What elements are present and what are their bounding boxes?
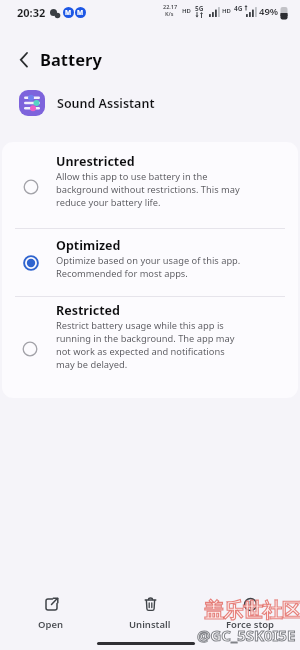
staticText: 22.17 bbox=[163, 3, 178, 10]
button[interactable] bbox=[2, 142, 298, 228]
staticText: 49% bbox=[259, 5, 279, 18]
staticText: Restricted bbox=[56, 302, 120, 319]
button[interactable]: Force stop bbox=[218, 597, 282, 639]
staticText: HD bbox=[222, 7, 231, 15]
staticText: Optimized bbox=[56, 237, 121, 254]
staticText: 盖乐世社区 bbox=[204, 598, 300, 623]
button[interactable]: Open bbox=[26, 597, 76, 639]
staticText: Optimize based on your usage of this app… bbox=[56, 254, 241, 280]
staticText: Open bbox=[38, 618, 64, 631]
staticText: HD bbox=[182, 7, 191, 15]
staticText: Battery bbox=[40, 48, 102, 70]
staticText: 5G bbox=[195, 4, 204, 13]
staticText: 20:32 bbox=[17, 5, 46, 20]
staticText: Restrict battery usage while this app is… bbox=[56, 319, 235, 371]
staticText: 盖乐世社区 bbox=[204, 598, 300, 623]
button[interactable]: Uninstall bbox=[120, 597, 180, 639]
staticText: @GC_5SK0I5E bbox=[197, 625, 296, 645]
button[interactable] bbox=[2, 229, 298, 296]
staticText: 4G bbox=[234, 4, 243, 13]
staticText: Unrestricted bbox=[56, 153, 135, 170]
staticText: Force stop bbox=[226, 618, 275, 631]
staticText: K/s bbox=[165, 10, 174, 17]
staticText: Uninstall bbox=[129, 618, 171, 631]
button[interactable]: Sound Assistant bbox=[19, 90, 155, 116]
staticText: M bbox=[77, 8, 84, 17]
staticText: Allow this app to use battery in the bac… bbox=[56, 170, 240, 209]
button[interactable] bbox=[2, 297, 298, 398]
staticText: M bbox=[65, 8, 72, 17]
staticText: @GC_5SK0I5E bbox=[197, 625, 296, 645]
staticText: Sound Assistant bbox=[57, 95, 155, 112]
button[interactable] bbox=[12, 48, 36, 72]
